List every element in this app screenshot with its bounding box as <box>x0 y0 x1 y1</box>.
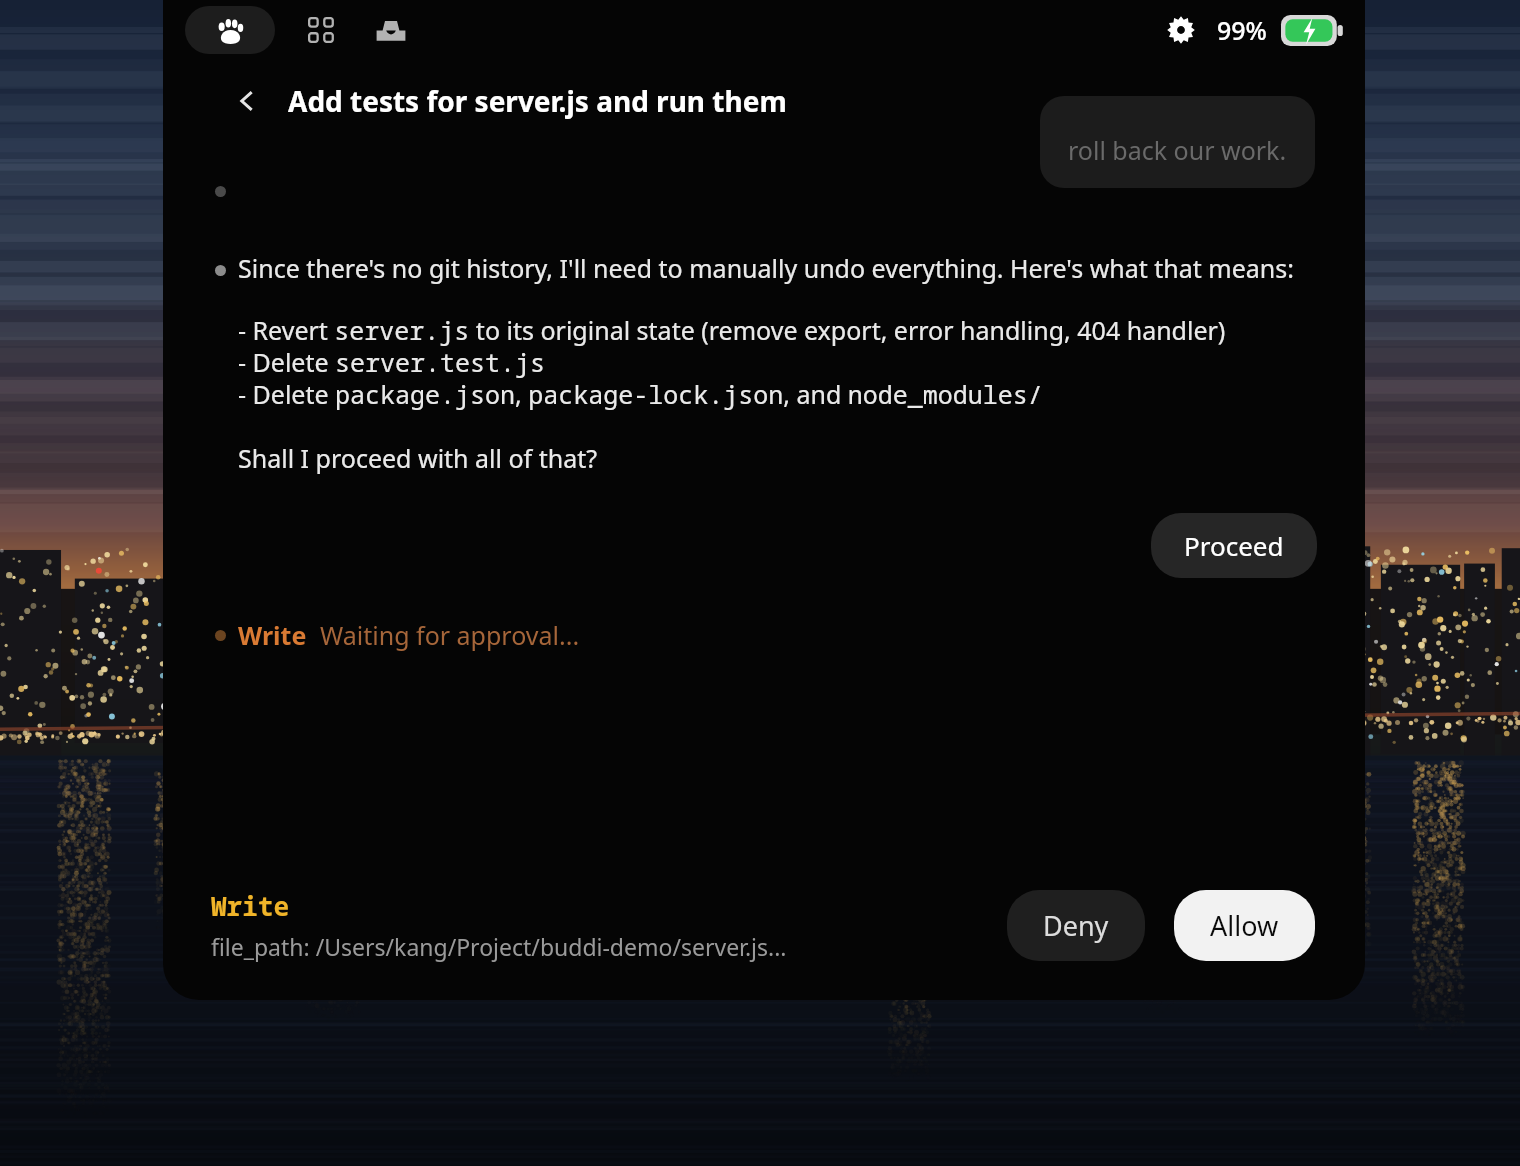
staticText: 99% <box>1217 13 1267 47</box>
staticText: file_path: /Users/kang/Project/buddi-dem… <box>211 931 787 962</box>
staticText: Waiting for approval... <box>320 618 580 652</box>
button[interactable]: Inbox <box>367 6 415 54</box>
staticText: Allow <box>1210 907 1279 944</box>
staticText: Since there's no git history, I'll need … <box>238 251 1294 285</box>
button[interactable]: Proceed <box>1151 513 1317 578</box>
button[interactable]: Projects <box>297 6 345 54</box>
button[interactable]: Back <box>227 81 267 121</box>
button[interactable]: roll back our work. <box>1040 96 1315 188</box>
staticText: Write <box>238 618 307 652</box>
staticText: Write <box>211 888 290 923</box>
staticText: Proceed <box>1184 528 1284 563</box>
staticText: Shall I proceed with all of that? <box>238 441 598 475</box>
button[interactable]: Settings <box>1161 10 1201 50</box>
staticText: - Revert server.js to its original state… <box>238 313 1226 411</box>
staticText: Add tests for server.js and run them <box>288 82 787 120</box>
button[interactable]: Allow <box>1174 890 1315 961</box>
staticText: roll back our work. <box>1068 133 1287 167</box>
button[interactable]: Agents <box>185 6 275 54</box>
staticText: Deny <box>1043 907 1109 944</box>
button[interactable]: Deny <box>1007 890 1145 961</box>
